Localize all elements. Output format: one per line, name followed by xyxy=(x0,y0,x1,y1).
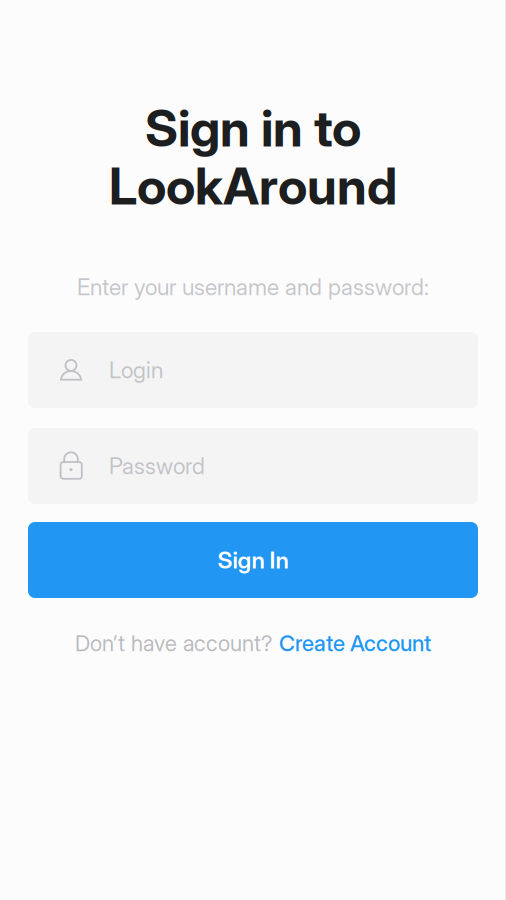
button[interactable]: Sign In xyxy=(28,522,478,598)
button[interactable]: Login xyxy=(28,332,478,408)
staticText: Password xyxy=(109,452,205,480)
button[interactable]: Password xyxy=(28,428,478,504)
staticText: Sign in to xyxy=(145,97,361,159)
staticText: Create Account xyxy=(279,630,431,657)
staticText: Sign In xyxy=(217,546,288,574)
staticText: Don’t have account? xyxy=(75,630,279,657)
button[interactable]: Create Account xyxy=(279,630,431,657)
staticText: LookAround xyxy=(109,155,397,217)
staticText: Enter your username and password: xyxy=(77,273,429,301)
staticText: Login xyxy=(109,356,163,384)
